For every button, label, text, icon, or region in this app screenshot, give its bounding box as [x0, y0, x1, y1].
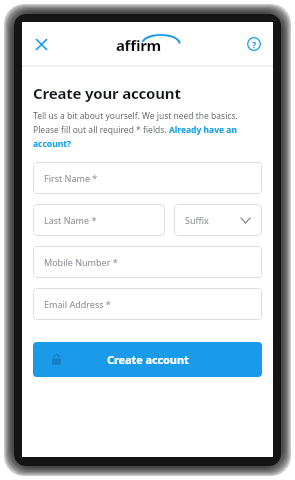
staticText: Create your account — [33, 83, 181, 103]
staticText: Tell us a bit about yourself. We just ne… — [33, 110, 262, 149]
button[interactable]: Create account — [33, 342, 262, 377]
staticText: Email Address * — [44, 298, 111, 310]
button[interactable]: Suffix — [174, 204, 262, 236]
staticText: First Name * — [44, 172, 98, 184]
staticText: ? — [252, 38, 257, 50]
button[interactable]: First Name * — [33, 162, 262, 194]
button[interactable]: Close — [29, 32, 53, 56]
staticText: Last Name * — [44, 214, 97, 226]
staticText: Create account — [107, 352, 189, 367]
button[interactable]: Mobile Number * — [33, 246, 262, 278]
staticText: affirm — [116, 35, 161, 55]
button[interactable]: Email Address * — [33, 288, 262, 320]
button[interactable]: Last Name * — [33, 204, 165, 236]
staticText: Suffix — [185, 214, 209, 226]
staticText: Mobile Number * — [44, 256, 118, 268]
button[interactable]: Help — [242, 32, 266, 56]
